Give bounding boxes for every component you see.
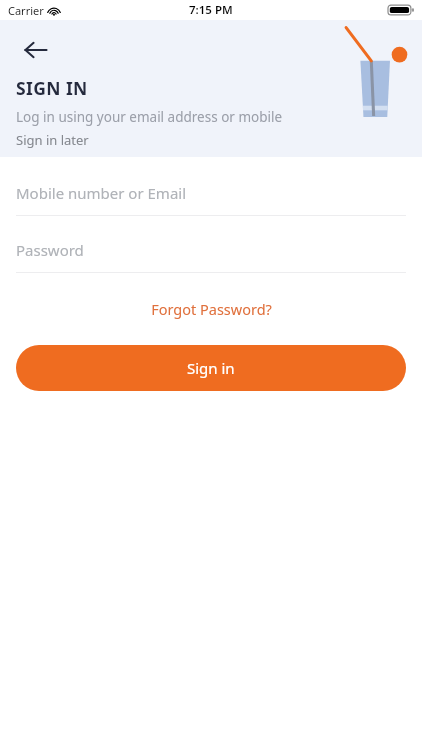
staticText: Sign in	[187, 358, 235, 378]
button[interactable]: Back	[16, 30, 56, 70]
staticText: Password	[16, 240, 84, 260]
button[interactable]: Password	[0, 228, 422, 273]
staticText: Log in using your email address or mobil…	[16, 108, 283, 126]
staticText: SIGN IN	[16, 76, 88, 100]
staticText: Sign in later	[16, 131, 89, 149]
button[interactable]: Sign in later	[16, 131, 89, 149]
staticText: Forgot Password?	[151, 299, 272, 319]
staticText: 7:15 PM	[189, 2, 233, 18]
button[interactable]: Sign in	[16, 345, 406, 391]
staticText: Carrier	[8, 3, 44, 18]
button[interactable]: Forgot Password?	[0, 293, 422, 325]
button[interactable]: Mobile number or Email	[0, 171, 422, 216]
staticText: Mobile number or Email	[16, 183, 187, 203]
